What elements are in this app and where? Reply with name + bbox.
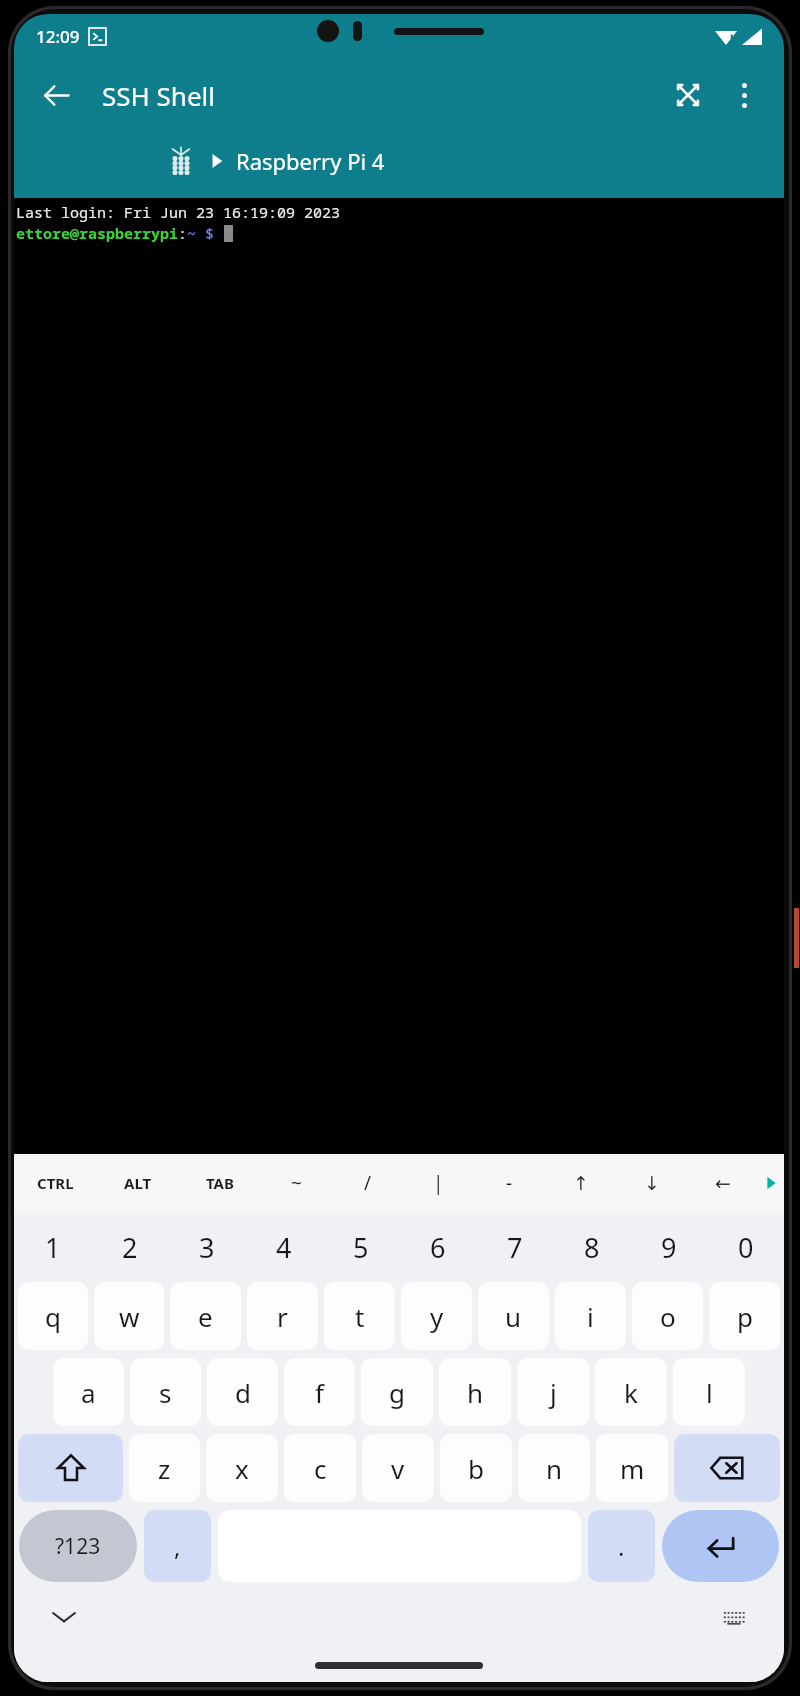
- staticText: c: [314, 1451, 327, 1486]
- staticText: .: [618, 1530, 625, 1563]
- button[interactable]: More options: [720, 71, 768, 119]
- staticText: z: [158, 1451, 171, 1486]
- staticText: 1: [45, 1229, 61, 1266]
- button[interactable]: 0: [707, 1216, 784, 1278]
- button[interactable]: a: [53, 1358, 124, 1426]
- button[interactable]: s: [130, 1358, 201, 1426]
- button[interactable]: 5: [322, 1216, 399, 1278]
- button[interactable]: o: [632, 1282, 703, 1350]
- staticText: TAB: [206, 1173, 234, 1193]
- button[interactable]: r: [247, 1282, 318, 1350]
- staticText: h: [467, 1375, 484, 1410]
- staticText: |: [433, 1170, 444, 1196]
- button[interactable]: n: [518, 1434, 590, 1502]
- staticText: ←: [715, 1172, 731, 1194]
- button[interactable]: 9: [630, 1216, 707, 1278]
- button[interactable]: Back: [30, 69, 82, 121]
- button[interactable]: ALT: [97, 1154, 179, 1212]
- button[interactable]: v: [362, 1434, 434, 1502]
- button[interactable]: h: [439, 1358, 511, 1426]
- button[interactable]: f: [284, 1358, 355, 1426]
- button[interactable]: 3: [168, 1216, 245, 1278]
- button[interactable]: Fullscreen: [662, 69, 714, 121]
- staticText: r: [277, 1299, 288, 1334]
- staticText: d: [235, 1375, 251, 1410]
- staticText: u: [505, 1299, 522, 1334]
- button[interactable]: b: [440, 1434, 512, 1502]
- staticText: ettore@raspberrypi:~ $: [16, 223, 224, 243]
- staticText: Raspberry Pi 4: [236, 146, 385, 176]
- button[interactable]: 6: [399, 1216, 476, 1278]
- button[interactable]: 8: [553, 1216, 630, 1278]
- button[interactable]: ←: [687, 1154, 758, 1212]
- button[interactable]: d: [207, 1358, 278, 1426]
- staticText: a: [81, 1375, 96, 1410]
- staticText: k: [624, 1375, 638, 1410]
- button[interactable]: q: [18, 1282, 88, 1350]
- staticText: SSH Shell: [102, 78, 215, 113]
- staticText: w: [119, 1299, 140, 1334]
- staticText: ,: [174, 1530, 181, 1563]
- staticText: 8: [584, 1229, 600, 1266]
- staticText: q: [45, 1299, 61, 1334]
- button[interactable]: -: [474, 1154, 545, 1212]
- staticText: l: [706, 1375, 713, 1410]
- button[interactable]: x: [206, 1434, 278, 1502]
- button[interactable]: ,: [144, 1510, 211, 1582]
- staticText: ALT: [124, 1173, 152, 1193]
- button[interactable]: 1: [14, 1216, 91, 1278]
- button[interactable]: u: [478, 1282, 549, 1350]
- button[interactable]: p: [709, 1282, 780, 1350]
- button[interactable]: ↑: [545, 1154, 616, 1212]
- button[interactable]: Hide keyboard: [44, 1597, 84, 1637]
- button[interactable]: Backspace: [674, 1434, 780, 1502]
- staticText: g: [389, 1375, 405, 1410]
- staticText: 5: [353, 1229, 369, 1266]
- button[interactable]: t: [324, 1282, 395, 1350]
- staticText: ?123: [55, 1532, 101, 1561]
- staticText: 0: [738, 1229, 754, 1266]
- button[interactable]: |: [403, 1154, 474, 1212]
- button[interactable]: ~: [261, 1154, 332, 1212]
- staticText: 2: [122, 1229, 138, 1266]
- staticText: ↑: [573, 1172, 589, 1194]
- button[interactable]: w: [94, 1282, 164, 1350]
- button[interactable]: 7: [476, 1216, 553, 1278]
- button[interactable]: z: [129, 1434, 200, 1502]
- staticText: -: [506, 1170, 513, 1196]
- staticText: n: [546, 1451, 563, 1486]
- button[interactable]: Raspberry Pi 4: [166, 132, 784, 190]
- button[interactable]: g: [361, 1358, 433, 1426]
- button[interactable]: ?123: [19, 1510, 137, 1582]
- button[interactable]: Enter: [662, 1510, 779, 1582]
- staticText: s: [159, 1375, 172, 1410]
- button[interactable]: /: [332, 1154, 403, 1212]
- staticText: m: [620, 1451, 645, 1486]
- staticText: ↓: [644, 1172, 660, 1194]
- button[interactable]: ↓: [616, 1154, 687, 1212]
- button[interactable]: y: [401, 1282, 472, 1350]
- button[interactable]: Shift: [18, 1434, 123, 1502]
- button[interactable]: More keys: [758, 1154, 784, 1212]
- button[interactable]: j: [517, 1358, 589, 1426]
- staticText: i: [587, 1299, 594, 1334]
- staticText: p: [737, 1299, 753, 1334]
- staticText: 7: [507, 1229, 523, 1266]
- button[interactable]: i: [555, 1282, 626, 1350]
- staticText: 9: [661, 1229, 677, 1266]
- button[interactable]: CTRL: [14, 1154, 97, 1212]
- button[interactable]: TAB: [179, 1154, 261, 1212]
- button[interactable]: .: [588, 1510, 655, 1582]
- button[interactable]: 2: [91, 1216, 168, 1278]
- button[interactable]: k: [595, 1358, 667, 1426]
- button[interactable]: m: [596, 1434, 668, 1502]
- staticText: /: [364, 1170, 372, 1196]
- button[interactable]: c: [284, 1434, 356, 1502]
- button[interactable]: 4: [245, 1216, 322, 1278]
- staticText: o: [660, 1299, 676, 1334]
- button[interactable]: e: [170, 1282, 241, 1350]
- staticText: t: [355, 1299, 365, 1334]
- button[interactable]: Change keyboard: [714, 1597, 754, 1637]
- button[interactable]: l: [673, 1358, 745, 1426]
